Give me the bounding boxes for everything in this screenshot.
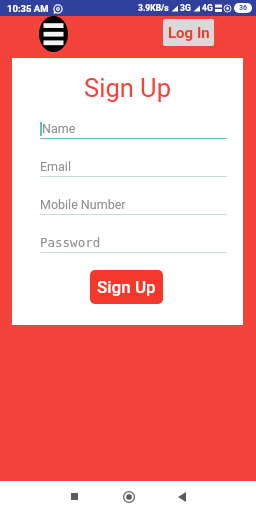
staticText: 10:35 AM: [7, 3, 49, 14]
button[interactable]: Log In: [163, 19, 214, 46]
button[interactable]: Email: [40, 159, 227, 177]
staticText: Email: [40, 159, 71, 174]
button[interactable]: Home: [116, 481, 141, 512]
staticText: Log In: [168, 24, 210, 42]
staticText: 3G: [180, 3, 191, 13]
staticText: 4G: [202, 3, 213, 13]
button[interactable]: Recent apps: [62, 481, 87, 512]
staticText: 36: [239, 4, 248, 12]
button[interactable]: Password: [40, 235, 227, 253]
button[interactable]: Mobile Number: [40, 197, 227, 215]
staticText: 3.9KB/s: [138, 3, 169, 13]
button[interactable]: Sign Up: [90, 270, 163, 304]
button[interactable]: Back: [169, 481, 194, 512]
staticText: Password: [40, 235, 101, 250]
staticText: Mobile Number: [40, 197, 126, 212]
button[interactable]: Name: [40, 121, 227, 139]
staticText: Sign Up: [97, 277, 156, 297]
button[interactable]: Open navigation menu: [39, 16, 68, 52]
staticText: Sign Up: [12, 73, 243, 103]
staticText: Name: [42, 121, 76, 136]
